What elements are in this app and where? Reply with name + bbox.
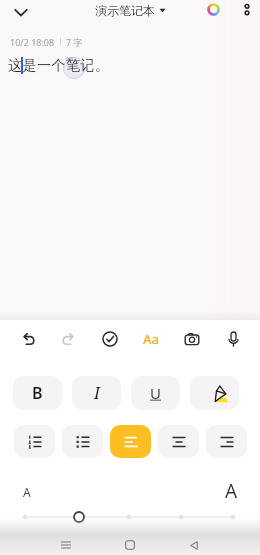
staticText: U (150, 383, 161, 403)
button[interactable] (158, 425, 199, 458)
button[interactable] (190, 376, 239, 410)
staticText: I (94, 382, 100, 404)
staticText: 10/2 18:08 (10, 36, 55, 48)
button[interactable] (62, 425, 103, 458)
staticText: 演示笔记本 (95, 3, 155, 18)
button[interactable] (8, 2, 34, 22)
staticText: A (225, 478, 238, 504)
staticText: A (23, 484, 31, 500)
button[interactable]: 演示笔记本 (95, 3, 166, 18)
staticText: Aa (143, 330, 159, 348)
button[interactable] (17, 327, 39, 351)
button[interactable] (205, 1, 222, 18)
button[interactable] (0, 505, 260, 529)
button[interactable] (14, 425, 55, 458)
button[interactable] (99, 327, 121, 351)
button[interactable] (53, 535, 79, 555)
button[interactable]: I (72, 376, 121, 410)
button[interactable] (181, 327, 203, 351)
staticText: bǐjì (66, 56, 73, 63)
staticText: 这是一个笔记。 (8, 57, 110, 75)
button[interactable] (58, 327, 80, 351)
button[interactable] (222, 327, 244, 351)
button[interactable]: Aa (139, 327, 163, 351)
staticText: B (32, 382, 43, 404)
button[interactable] (181, 535, 207, 555)
button[interactable] (206, 425, 247, 458)
button[interactable]: B (13, 376, 62, 410)
button[interactable] (238, 0, 256, 20)
staticText: 7 字 (66, 36, 83, 48)
button[interactable] (110, 425, 151, 458)
button[interactable] (117, 535, 143, 555)
button[interactable]: U (131, 376, 180, 410)
